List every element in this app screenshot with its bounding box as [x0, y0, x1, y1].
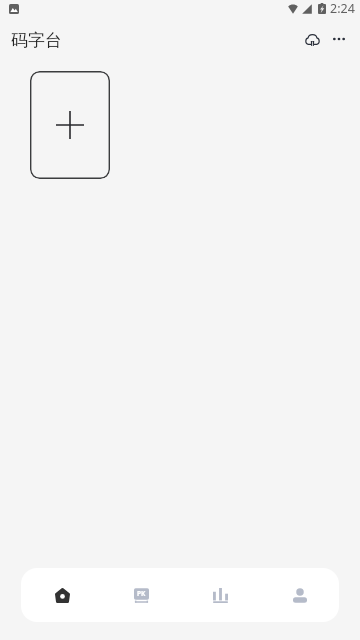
- button[interactable]: Profile: [260, 568, 339, 622]
- staticText: 2:24: [330, 0, 355, 17]
- staticText: PK: [137, 589, 146, 598]
- button[interactable]: Home: [23, 568, 102, 622]
- button[interactable]: Cloud backup: [292, 23, 332, 55]
- staticText: 码字台: [11, 30, 62, 51]
- button[interactable]: More options: [319, 23, 359, 55]
- button[interactable]: New document: [30, 71, 110, 179]
- button[interactable]: Statistics: [181, 568, 260, 622]
- button[interactable]: PK: [102, 568, 181, 622]
